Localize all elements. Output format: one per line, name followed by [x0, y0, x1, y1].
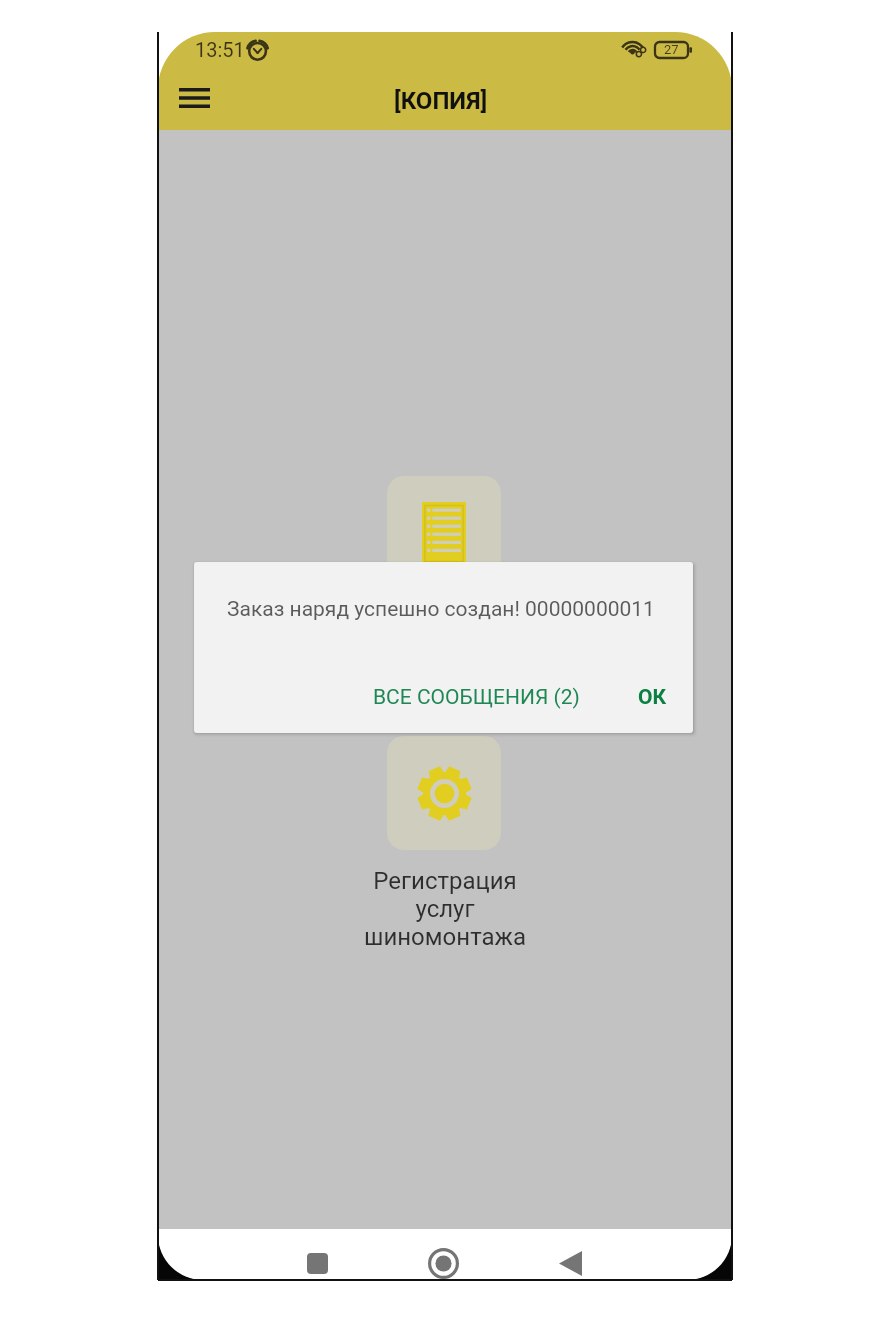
- button[interactable]: ВСЕ СООБЩЕНИЯ (2): [360, 673, 593, 722]
- staticText: ВСЕ СООБЩЕНИЯ (2): [373, 685, 580, 710]
- button[interactable]: Back: [546, 1239, 594, 1280]
- staticText: Регистрация услуг шиномонтажа: [158, 867, 732, 951]
- staticText: ОК: [638, 685, 667, 710]
- button[interactable]: Tire service registration: [387, 736, 501, 850]
- staticText: Заказ наряд успешно создан! 00000000011: [227, 597, 655, 622]
- staticText: 13:51: [195, 38, 245, 61]
- button[interactable]: Open navigation menu: [167, 71, 221, 125]
- staticText: 27: [664, 42, 679, 57]
- staticText: [КОПИЯ]: [394, 87, 488, 115]
- button[interactable]: Home: [419, 1239, 467, 1280]
- button[interactable]: Recent apps: [293, 1239, 341, 1280]
- button[interactable]: Orders list: [387, 476, 501, 590]
- button[interactable]: ОК: [625, 673, 680, 722]
